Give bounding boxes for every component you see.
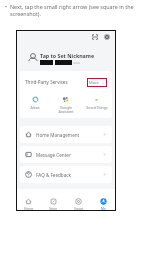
button[interactable]: FAQ & Feedback (20, 166, 112, 183)
staticText: • (5, 3, 8, 10)
staticText: Alexa (30, 105, 40, 110)
staticText: Tap to Set Nickname (40, 52, 95, 59)
button[interactable]: SmartThings (81, 93, 112, 110)
button[interactable]: Smart (66, 198, 91, 211)
button[interactable]: Message Center (20, 146, 112, 163)
button[interactable]: Alexa (20, 93, 50, 110)
staticText: Third-Party Services (25, 79, 68, 85)
button[interactable]: Home Management (20, 126, 112, 143)
staticText: Smart (74, 206, 84, 210)
staticText: Home (24, 206, 34, 210)
staticText: More (89, 80, 99, 85)
staticText: Next, tap the small right arrow (see squ… (10, 3, 148, 17)
button[interactable]: Store (41, 198, 66, 211)
button[interactable]: Profile (28, 53, 38, 63)
button[interactable]: Scan QR code (92, 34, 98, 40)
button[interactable]: Me (91, 198, 116, 211)
staticText: Home Management (36, 132, 80, 138)
button[interactable]: More (89, 80, 105, 85)
button[interactable]: Tap to Set Nickname (40, 52, 95, 65)
staticText: Google Assistant (58, 105, 74, 114)
staticText: Me (101, 206, 106, 210)
staticText: SmartThings (86, 105, 108, 110)
button[interactable]: Settings (104, 34, 110, 40)
button[interactable]: Google Assistant (50, 93, 81, 114)
button[interactable]: Home (16, 198, 41, 211)
staticText: FAQ & Feedback (36, 172, 71, 178)
staticText: Store (49, 206, 58, 210)
staticText: Message Center (36, 152, 71, 158)
